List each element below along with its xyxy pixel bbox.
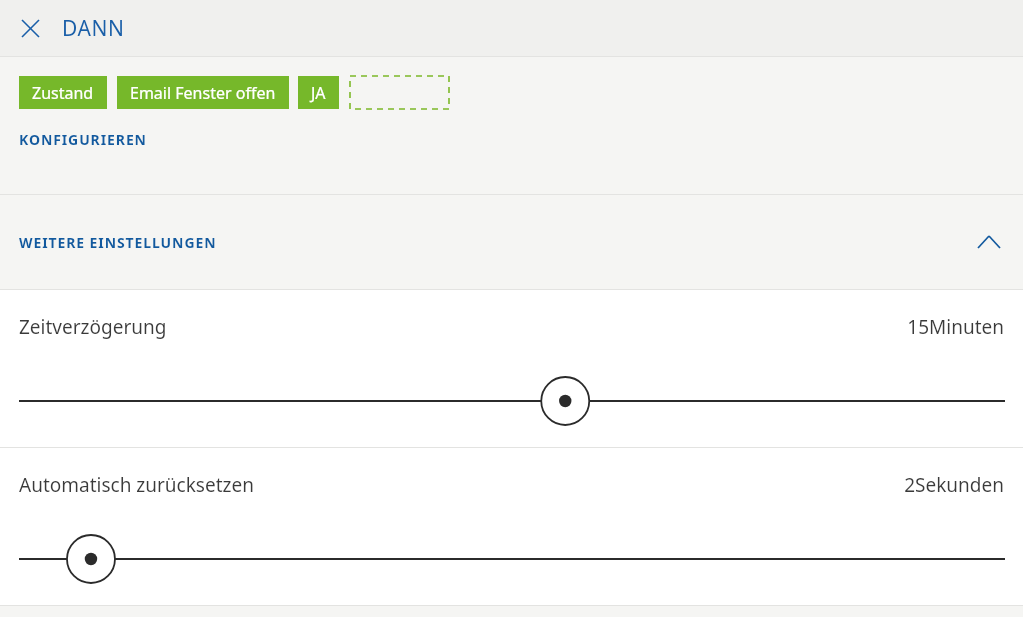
staticText: Zustand [32,82,94,104]
staticText: 15Minuten [907,314,1004,340]
staticText: JA [311,82,326,104]
button[interactable]: Schließen [14,12,46,44]
staticText: 2Sekunden [904,472,1004,498]
other: Einklappen [974,227,1004,257]
button[interactable]: Zustand [19,76,107,109]
button[interactable]: KONFIGURIEREN [19,130,147,149]
button[interactable]: Bedingung hinzufügen [350,76,449,109]
button[interactable]: JA [298,76,339,109]
staticText: Zeitverzögerung [19,314,167,340]
staticText: KONFIGURIEREN [19,130,147,149]
button[interactable]: Automatisch zurücksetzen Schieberegler [0,530,1023,588]
staticText: Automatisch zurücksetzen [19,472,254,498]
staticText: Email Fenster offen [130,82,276,104]
staticText: DANN [62,14,125,43]
button[interactable]: WEITERE EINSTELLUNGEN [0,195,1023,289]
button[interactable]: Zeitverzögerung Schieberegler [0,372,1023,430]
button[interactable]: Email Fenster offen [117,76,289,109]
staticText: WEITERE EINSTELLUNGEN [19,233,217,252]
